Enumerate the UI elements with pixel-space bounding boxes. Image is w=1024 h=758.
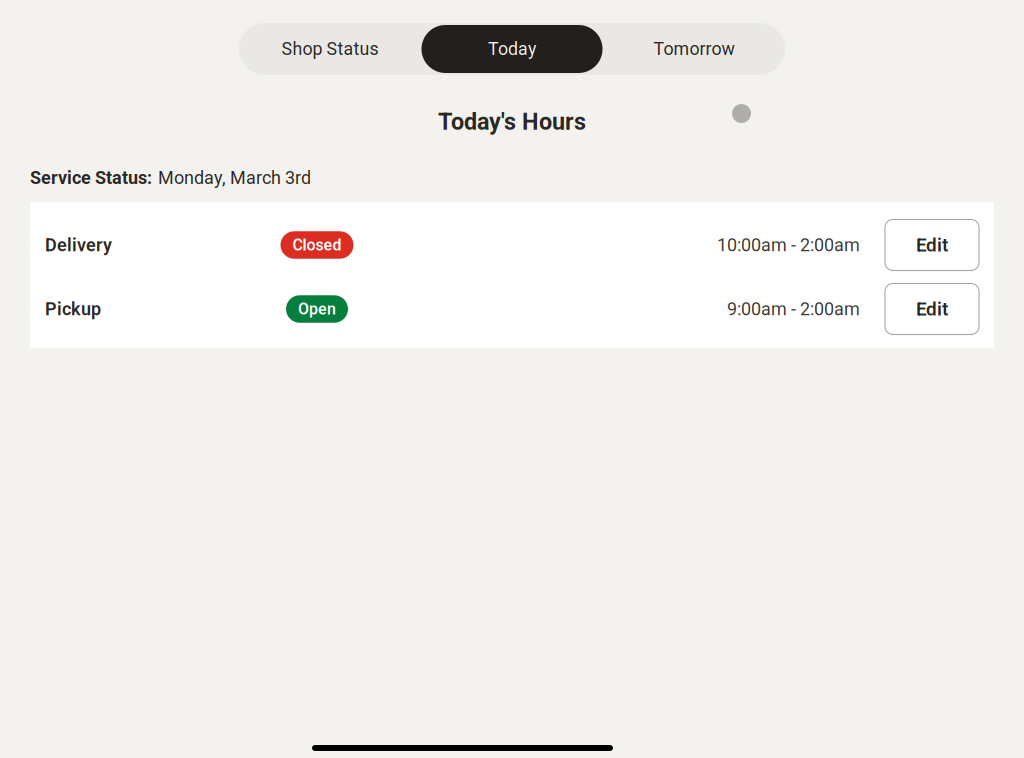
button[interactable]: Shop Status: [239, 23, 421, 75]
staticText: Delivery: [45, 234, 112, 256]
staticText: Tomorrow: [653, 39, 734, 59]
staticText: Today: [488, 39, 536, 59]
staticText: Closed: [292, 236, 341, 254]
staticText: Monday, March 3rd: [158, 167, 311, 188]
staticText: Service Status:: [30, 167, 152, 188]
staticText: Pickup: [45, 298, 101, 320]
button[interactable]: Today: [421, 23, 603, 75]
button[interactable]: Tomorrow: [603, 23, 785, 75]
staticText: Edit: [916, 234, 948, 256]
button[interactable]: Edit: [885, 283, 979, 334]
staticText: 10:00am - 2:00am: [717, 234, 860, 256]
staticText: Today's Hours: [438, 108, 586, 135]
staticText: Shop Status: [281, 39, 378, 59]
staticText: Open: [298, 300, 336, 318]
button[interactable]: Edit: [885, 219, 979, 270]
staticText: 9:00am - 2:00am: [727, 298, 860, 320]
staticText: Today: [488, 39, 536, 59]
staticText: Edit: [916, 298, 948, 320]
